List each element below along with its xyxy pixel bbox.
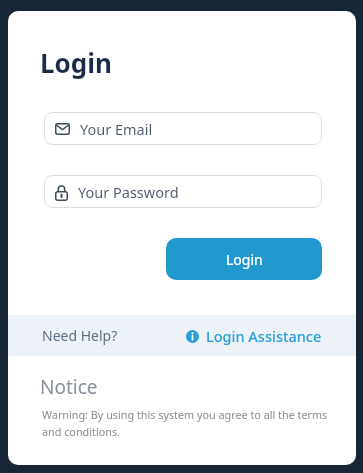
button[interactable]: Login Assistance xyxy=(186,326,322,346)
staticText: Login xyxy=(40,45,112,80)
button[interactable]: Your Password xyxy=(44,175,322,208)
staticText: Login Assistance xyxy=(206,326,322,346)
button[interactable]: Your Email xyxy=(44,112,322,145)
button[interactable]: Login xyxy=(166,238,322,280)
staticText: Warning: By using this system you agree … xyxy=(42,407,328,439)
staticText: Login xyxy=(226,250,263,269)
staticText: Your Email xyxy=(80,119,153,139)
staticText: Notice xyxy=(40,374,98,400)
staticText: Your Password xyxy=(78,182,179,202)
staticText: Need Help? xyxy=(42,326,118,345)
